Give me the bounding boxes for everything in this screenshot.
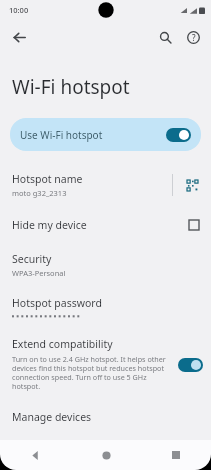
staticText: Turn on to use 2.4 GHz hotspot. It helps… [12,354,172,392]
staticText: Extend compatibility [12,337,113,351]
staticText: Hotspot password [12,296,102,310]
staticText: Use Wi-Fi hotspot [20,128,166,142]
staticText: Wi-Fi hotspot [12,74,130,100]
button[interactable]: Extend compatibility [0,337,211,392]
button[interactable]: Home [71,440,141,470]
button[interactable]: Search [151,23,179,51]
staticText: Hide my device [12,218,189,232]
button[interactable]: Hotspot name [0,166,211,204]
button[interactable]: Security [0,250,211,280]
button[interactable]: Show QR code [173,166,211,204]
button[interactable]: Manage devices [0,408,211,426]
button[interactable]: Hotspot password [0,294,211,321]
button[interactable]: Hide my device [0,214,211,236]
staticText: Hotspot name [12,172,83,186]
staticText: 10:00 [9,5,29,15]
button[interactable]: Back [0,440,71,470]
button[interactable]: Back [4,22,34,52]
button[interactable]: Help [179,23,207,51]
staticText: WPA3-Personal [12,268,66,278]
staticText: Security [12,252,52,266]
staticText: moto g32_2313 [12,188,67,198]
button[interactable]: Use Wi-Fi hotspot [10,118,201,151]
button[interactable]: Recent apps [141,440,211,470]
staticText: ? [192,32,196,43]
